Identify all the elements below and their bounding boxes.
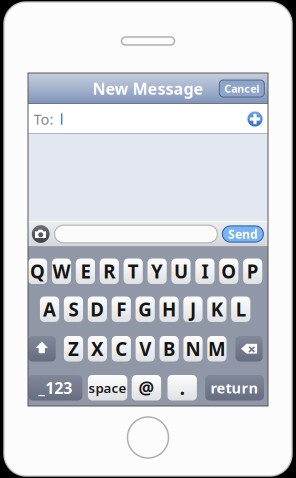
button[interactable]: Y [147, 258, 167, 284]
button[interactable]: _123 [28, 375, 82, 400]
staticText: Q [30, 259, 45, 284]
staticText: C [115, 336, 127, 361]
staticText: Z [68, 336, 79, 361]
staticText: A [43, 297, 56, 322]
staticText: To: [33, 109, 53, 129]
staticText: N [185, 336, 200, 361]
staticText: K [211, 297, 223, 322]
button[interactable]: C [112, 336, 131, 361]
staticText: E [80, 259, 90, 284]
button[interactable]: T [124, 258, 143, 284]
staticText: L [236, 297, 246, 322]
staticText: H [162, 297, 176, 322]
staticText: W [52, 259, 70, 284]
button[interactable]: Cancel [219, 80, 264, 97]
staticText: V [139, 336, 151, 361]
button[interactable]: P [243, 258, 262, 284]
staticText: S [68, 297, 78, 322]
button[interactable]: J [183, 296, 203, 322]
staticText: Y [151, 259, 163, 284]
staticText: Cancel [224, 81, 259, 96]
staticText: U [174, 259, 188, 284]
button[interactable]: O [219, 258, 238, 284]
button[interactable]: Z [64, 336, 83, 361]
button[interactable]: Shift [28, 336, 56, 361]
button[interactable]: G [136, 296, 155, 322]
staticText: Send [228, 226, 258, 242]
staticText: space [89, 379, 127, 397]
button[interactable]: Q [28, 258, 47, 284]
button[interactable]: B [159, 336, 179, 361]
button[interactable]: U [171, 258, 191, 284]
button[interactable]: Camera [32, 225, 50, 243]
staticText: J [190, 297, 196, 322]
staticText: @ [138, 376, 154, 399]
button[interactable]: @ [132, 375, 161, 400]
button[interactable]: return [205, 375, 264, 400]
staticText: . [180, 375, 185, 400]
button[interactable]: D [88, 296, 107, 322]
staticText: T [128, 259, 139, 284]
staticText: P [247, 259, 259, 284]
button[interactable]: X [88, 336, 107, 361]
button[interactable]: K [207, 296, 226, 322]
staticText: D [90, 297, 104, 322]
button[interactable]: R [100, 258, 119, 284]
button[interactable]: . [167, 375, 197, 400]
staticText: New Message [92, 78, 203, 99]
button[interactable]: Add contact [245, 109, 265, 129]
button[interactable]: N [183, 336, 203, 361]
staticText: × [248, 339, 256, 358]
staticText: return [211, 378, 259, 397]
button[interactable]: H [159, 296, 179, 322]
button[interactable]: I [195, 258, 214, 284]
button[interactable]: E [76, 258, 95, 284]
button[interactable]: A [40, 296, 59, 322]
staticText: F [116, 297, 126, 322]
button[interactable]: Delete [235, 336, 263, 361]
button[interactable]: Send [222, 226, 263, 242]
button[interactable]: space [88, 375, 127, 400]
button[interactable]: F [112, 296, 131, 322]
button[interactable]: V [136, 336, 155, 361]
staticText: X [91, 336, 104, 361]
staticText: O [221, 259, 236, 284]
staticText: G [138, 297, 152, 322]
staticText: _123 [38, 377, 72, 398]
staticText: B [163, 336, 175, 361]
staticText: I [201, 259, 208, 284]
staticText: M [208, 336, 226, 361]
button[interactable]: W [52, 258, 71, 284]
button[interactable]: S [64, 296, 83, 322]
staticText: R [103, 259, 115, 284]
button[interactable]: M [207, 336, 226, 361]
button[interactable]: L [231, 296, 250, 322]
